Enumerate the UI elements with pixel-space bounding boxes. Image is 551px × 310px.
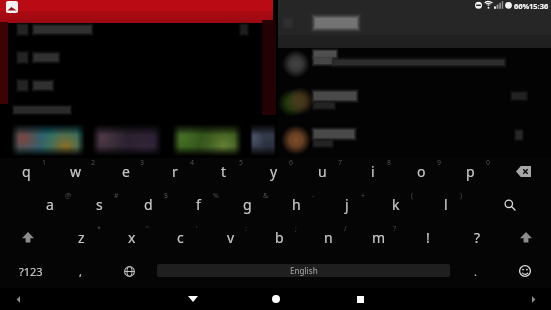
button[interactable]: f (174, 189, 223, 220)
staticText: o (417, 162, 426, 181)
button[interactable] (172, 124, 242, 156)
button[interactable]: m (354, 222, 403, 253)
staticText: 9 (437, 158, 442, 168)
staticText: q (22, 162, 31, 181)
button[interactable]: Change language (106, 257, 152, 285)
staticText: # (114, 191, 119, 201)
button[interactable]: English (157, 264, 450, 277)
button[interactable]: Collapse keyboard (0, 288, 36, 310)
staticText: 2 (91, 158, 96, 168)
staticText: 7 (338, 158, 343, 168)
staticText: z (78, 228, 85, 247)
button[interactable]: Search (487, 189, 532, 220)
button[interactable] (11, 124, 85, 156)
staticText: + (361, 191, 366, 201)
staticText: v (227, 228, 235, 247)
button[interactable]: x (107, 222, 156, 253)
staticText: ) (460, 191, 463, 201)
staticText: p (466, 162, 475, 181)
button[interactable]: b (255, 222, 304, 253)
button[interactable]: v (206, 222, 255, 253)
button[interactable]: Back (175, 288, 211, 310)
button[interactable]: , (57, 257, 103, 285)
staticText: ; (295, 224, 297, 234)
staticText: t (221, 162, 227, 181)
staticText: i (371, 162, 375, 181)
staticText: , (79, 264, 82, 279)
staticText: 0 (486, 158, 491, 168)
button[interactable]: e (101, 156, 150, 187)
staticText: k (392, 195, 400, 214)
staticText: x (128, 228, 136, 247)
button[interactable]: Home (258, 288, 294, 310)
button[interactable]: d (124, 189, 173, 220)
staticText: r (172, 162, 178, 181)
button[interactable]: c (156, 222, 205, 253)
staticText: a (46, 195, 54, 214)
staticText: ! (426, 228, 430, 247)
button[interactable]: i (348, 156, 397, 187)
staticText: 66% (514, 1, 530, 11)
staticText: 1 (42, 158, 47, 168)
staticText: " (146, 224, 149, 234)
staticText: e (122, 162, 130, 181)
staticText: 4 (190, 158, 195, 168)
button[interactable]: Emoji (502, 257, 548, 285)
button[interactable] (92, 124, 162, 156)
staticText: $ (164, 191, 169, 201)
staticText: % (213, 191, 219, 201)
staticText: @ (65, 191, 72, 201)
button[interactable]: p (446, 156, 495, 187)
button[interactable]: t (199, 156, 248, 187)
staticText: u (318, 162, 327, 181)
staticText: 6 (289, 158, 294, 168)
button[interactable]: ? (453, 222, 502, 253)
staticText: y (270, 162, 278, 181)
button[interactable]: y (249, 156, 298, 187)
button[interactable]: r (150, 156, 199, 187)
staticText: ( (411, 191, 414, 201)
button[interactable] (278, 124, 551, 158)
button[interactable]: z (57, 222, 106, 253)
staticText: c (177, 228, 184, 247)
button[interactable]: g (223, 189, 272, 220)
button[interactable]: a (25, 189, 74, 220)
button[interactable]: o (397, 156, 446, 187)
button[interactable]: u (298, 156, 347, 187)
staticText: b (275, 228, 284, 247)
button[interactable]: Menu (515, 288, 551, 310)
button[interactable] (250, 124, 276, 156)
button[interactable] (278, 86, 551, 123)
button[interactable]: n (304, 222, 353, 253)
button[interactable]: Shift (5, 222, 50, 253)
staticText: s (96, 195, 103, 214)
button[interactable]: l (421, 189, 470, 220)
button[interactable]: k (371, 189, 420, 220)
staticText: . (474, 264, 477, 279)
staticText: 15:36 (529, 1, 549, 11)
staticText: d (144, 195, 153, 214)
staticText: h (292, 195, 301, 214)
button[interactable]: q (2, 156, 51, 187)
button[interactable]: . (452, 257, 498, 285)
button[interactable]: j (322, 189, 371, 220)
staticText: & (263, 191, 269, 201)
button[interactable]: w (51, 156, 100, 187)
staticText: ' (196, 224, 198, 234)
staticText: * (97, 224, 101, 234)
button[interactable]: Recent apps (342, 288, 378, 310)
staticText: - (312, 191, 315, 201)
button[interactable]: ! (403, 222, 452, 253)
staticText: ? (474, 228, 481, 247)
button[interactable]: Shift (503, 222, 548, 253)
button[interactable]: s (75, 189, 124, 220)
staticText: : (245, 224, 247, 234)
staticText: 8 (387, 158, 392, 168)
staticText: English (290, 265, 318, 276)
staticText: ? (393, 224, 397, 234)
button[interactable]: ?123 (7, 257, 55, 285)
button[interactable]: Photos (6, 1, 18, 13)
button[interactable] (278, 48, 551, 85)
button[interactable]: h (272, 189, 321, 220)
button[interactable]: Backspace (500, 156, 547, 187)
